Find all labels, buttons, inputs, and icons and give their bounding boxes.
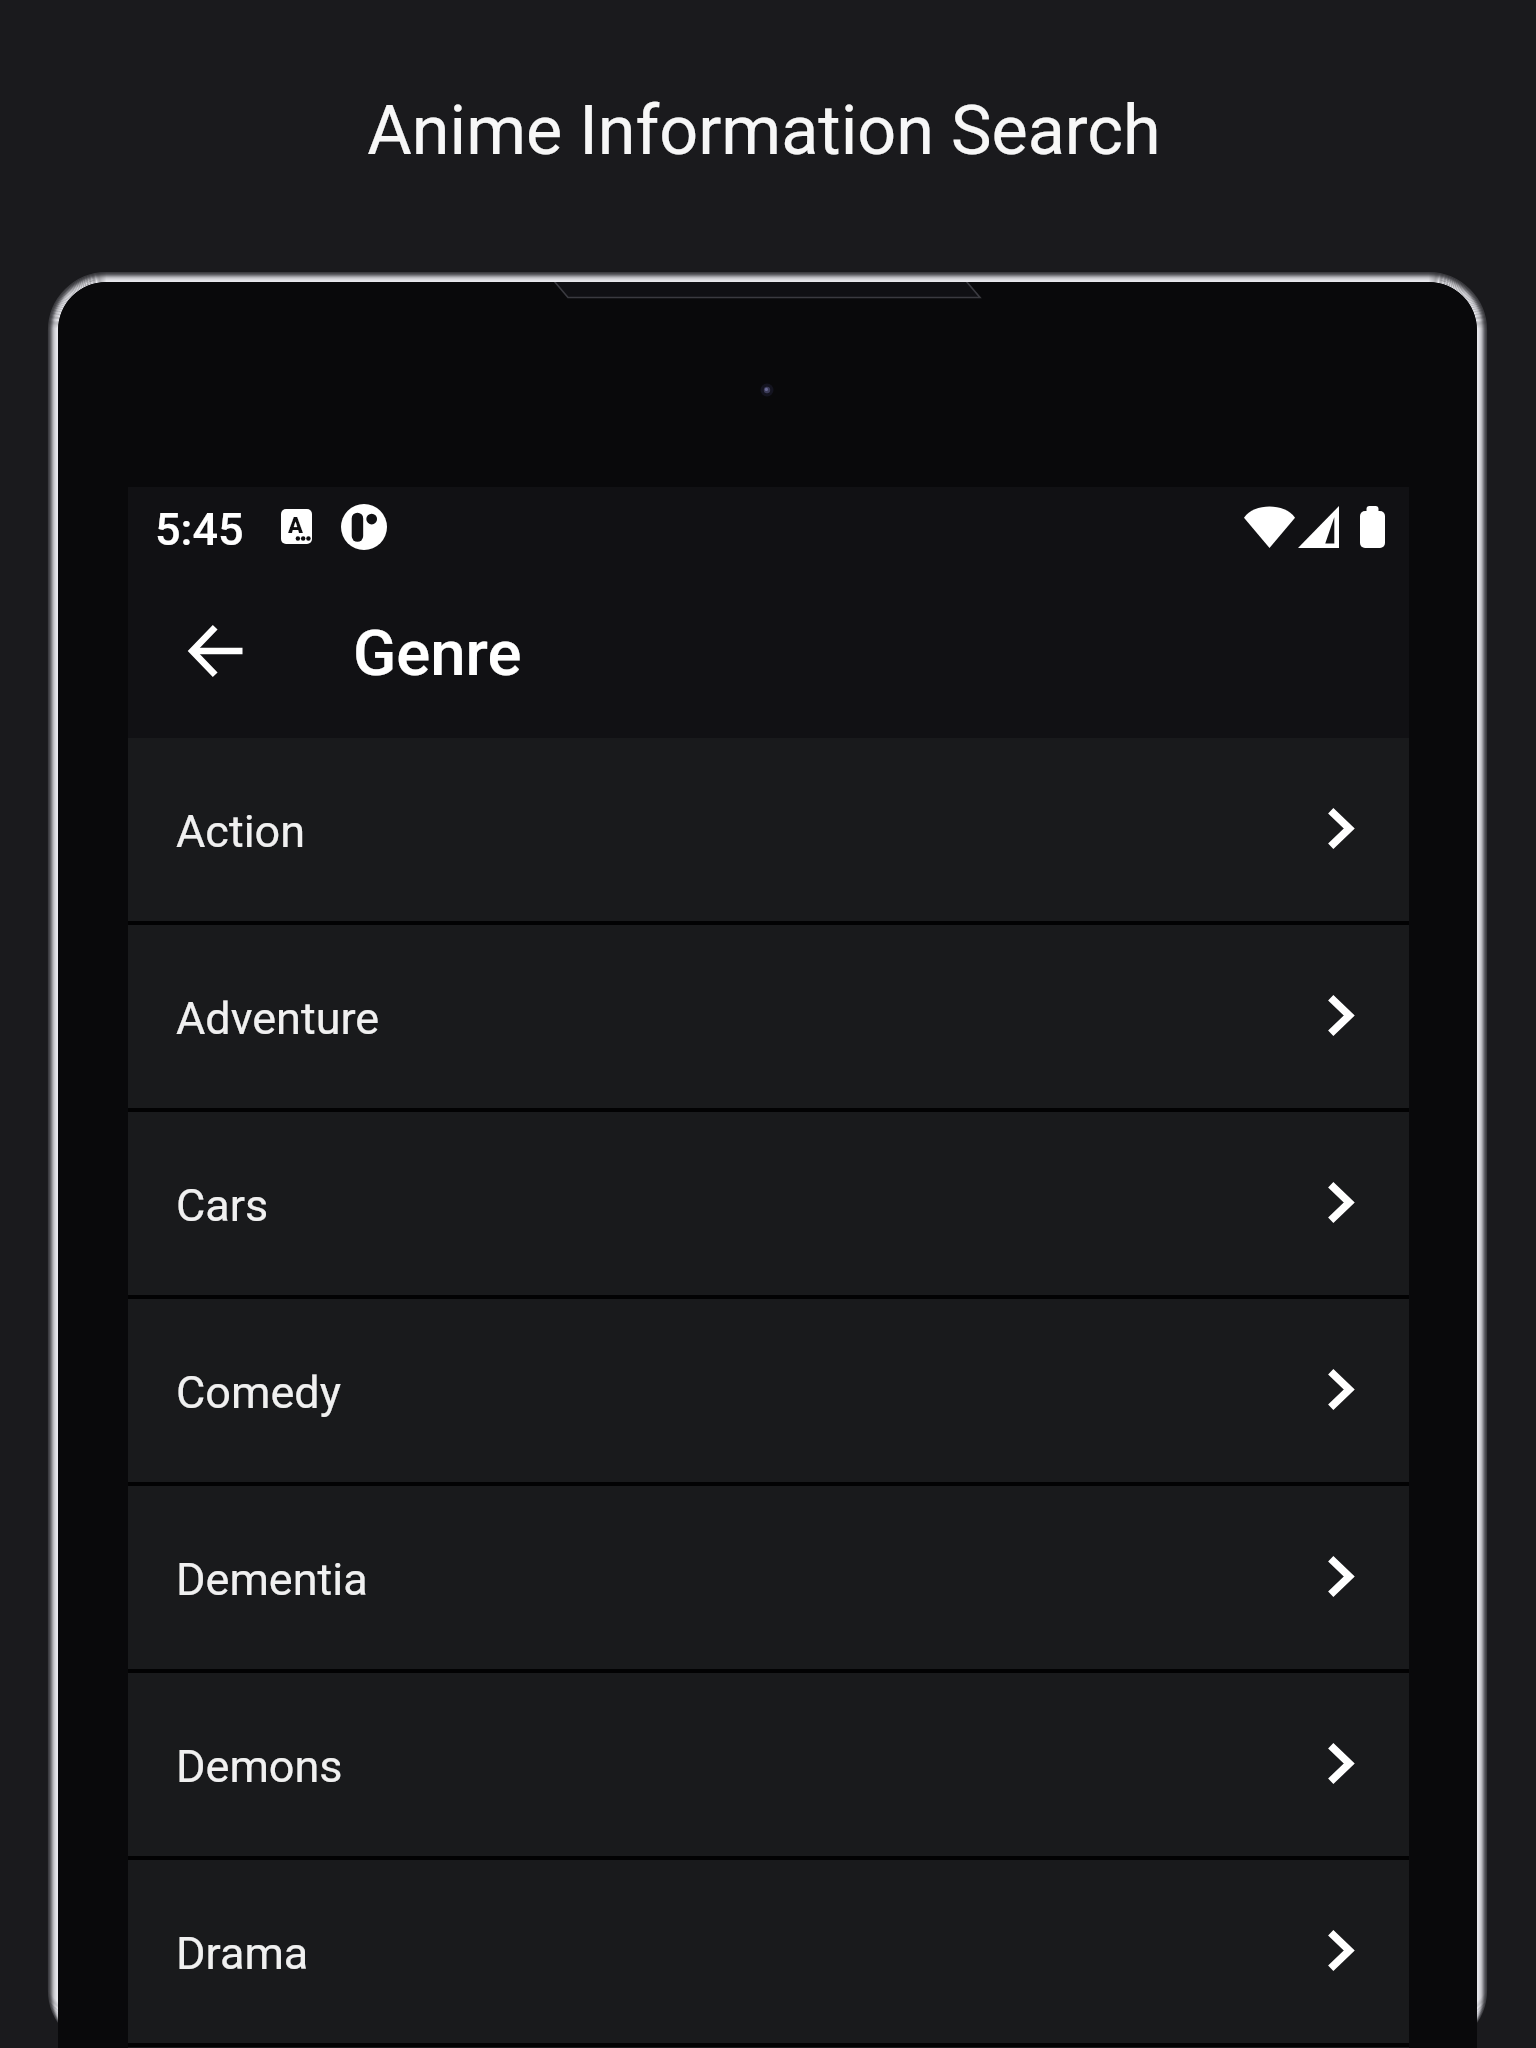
staticText: A xyxy=(288,513,303,539)
staticText: Adventure xyxy=(176,992,380,1045)
staticText: Comedy xyxy=(176,1366,341,1419)
button[interactable]: Dementia xyxy=(128,1486,1409,1669)
button[interactable]: Action xyxy=(128,738,1409,921)
button[interactable]: Comedy xyxy=(128,1299,1409,1482)
staticText: Demons xyxy=(176,1740,343,1793)
button[interactable]: Adventure xyxy=(128,925,1409,1108)
staticText: Anime Information Search xyxy=(0,91,1532,171)
staticText: Dementia xyxy=(176,1553,368,1606)
button[interactable]: Drama xyxy=(128,1860,1409,2043)
button[interactable]: Demons xyxy=(128,1673,1409,1856)
staticText: Drama xyxy=(176,1927,309,1980)
staticText: Action xyxy=(176,805,306,858)
staticText: Genre xyxy=(353,616,522,690)
staticText: 5:45 xyxy=(155,503,244,556)
button[interactable]: Navigate up xyxy=(159,594,272,707)
staticText: Cars xyxy=(176,1179,269,1232)
button[interactable]: Cars xyxy=(128,1112,1409,1295)
